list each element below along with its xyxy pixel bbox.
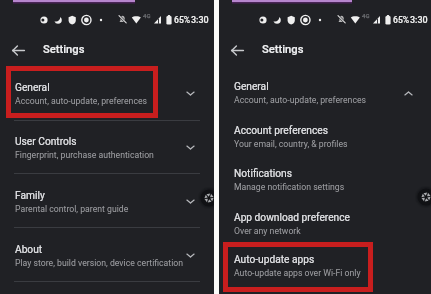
button[interactable]: Auto-update apps (219, 249, 431, 283)
button[interactable]: Account preferences (219, 120, 431, 154)
button[interactable]: Notifications (219, 163, 431, 197)
staticText: Auto-update apps (234, 254, 315, 266)
button[interactable]: General (219, 76, 431, 110)
staticText: Over any network (234, 226, 301, 236)
staticText: Parental control, parent guide (15, 204, 129, 214)
staticText: Family (15, 190, 45, 202)
staticText: 3:30 (410, 15, 428, 26)
staticText: 4G (143, 12, 151, 19)
staticText: General (15, 82, 50, 94)
staticText: Settings (262, 43, 304, 56)
button[interactable]: User Controls (0, 121, 214, 174)
button[interactable]: Expand (184, 87, 197, 100)
staticText: Account, auto-update, preferences (15, 96, 148, 106)
button[interactable]: About (0, 229, 214, 282)
staticText: General (234, 81, 269, 93)
staticText: 65% (174, 15, 191, 25)
button[interactable]: General (0, 67, 214, 120)
button[interactable]: Family (0, 175, 214, 228)
staticText: 3:30 (191, 15, 209, 26)
button[interactable]: Back (8, 40, 28, 60)
button[interactable]: Expand (184, 249, 197, 262)
staticText: Play store, build version, device certif… (15, 258, 184, 268)
staticText: Your email, country, & profiles (234, 139, 348, 149)
staticText: Manage notification settings (234, 182, 345, 192)
staticText: App download preference (234, 212, 350, 224)
staticText: 65% (393, 15, 410, 25)
button[interactable]: Expand (184, 141, 197, 154)
button[interactable]: Expand (184, 195, 197, 208)
staticText: Account, auto-update, preferences (234, 95, 367, 105)
staticText: Notifications (234, 168, 292, 180)
button[interactable]: Collapse (402, 87, 415, 100)
button[interactable]: App download preference (219, 207, 431, 241)
button[interactable]: Back (227, 40, 247, 60)
staticText: User Controls (15, 136, 77, 148)
staticText: Auto-update apps over Wi-Fi only (234, 268, 361, 278)
staticText: Settings (43, 43, 85, 56)
staticText: About (15, 244, 43, 256)
staticText: 4G (362, 12, 370, 19)
staticText: Fingerprint, purchase authentication (15, 150, 154, 160)
staticText: Account preferences (234, 125, 328, 137)
